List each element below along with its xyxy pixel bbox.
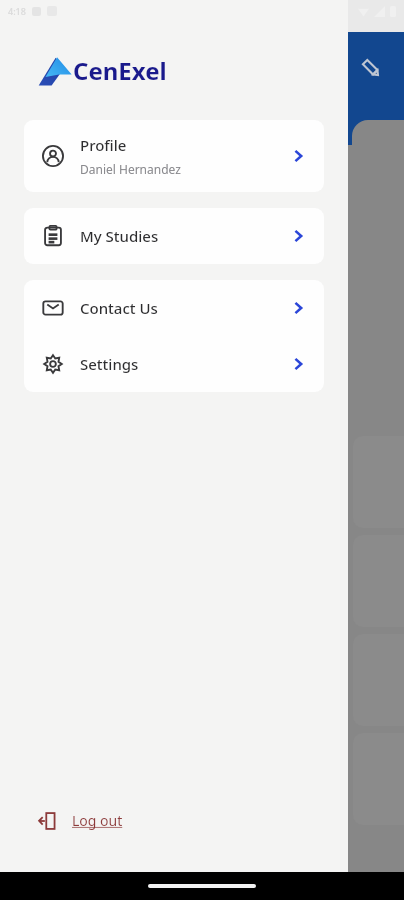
staticText: 4:18 — [8, 5, 26, 17]
staticText: Settings — [80, 354, 139, 374]
button[interactable]: Settings — [24, 336, 324, 392]
staticText: Log out — [72, 811, 123, 830]
button[interactable]: Contact Us — [24, 280, 324, 336]
staticText: My Studies — [80, 226, 159, 246]
staticText: CenExel — [73, 54, 167, 87]
button[interactable]: Profile — [24, 120, 324, 192]
button[interactable]: Log out — [30, 805, 131, 836]
staticText: Daniel Hernandez — [80, 161, 181, 177]
staticText: Contact Us — [80, 298, 158, 318]
staticText: Profile — [80, 135, 127, 155]
button[interactable]: My Studies — [24, 208, 324, 264]
